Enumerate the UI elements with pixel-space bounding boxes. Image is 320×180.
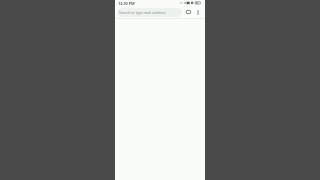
button[interactable]: Tabs [183, 7, 193, 17]
staticText: 12:30 PM [118, 1, 135, 6]
button[interactable]: More options [193, 7, 203, 17]
button[interactable]: Search or type web address [117, 8, 182, 17]
staticText: Search or type web address [119, 10, 166, 15]
